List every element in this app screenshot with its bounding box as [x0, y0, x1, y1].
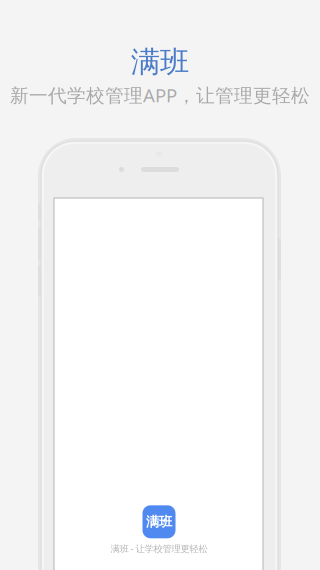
button[interactable]: 满班 - 让学校管理更轻松 [89, 500, 229, 560]
staticText: 满班 [131, 44, 189, 80]
staticText: 满班 - 让学校管理更轻松 [110, 542, 207, 555]
staticText: 新一代学校管理APP，让管理更轻松 [10, 83, 310, 107]
staticText: 满班 [146, 514, 172, 530]
